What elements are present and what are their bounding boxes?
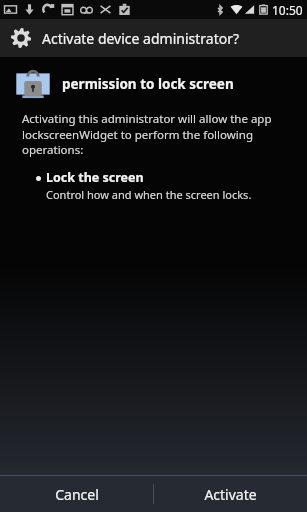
staticText: Lock the screen <box>46 169 144 186</box>
button[interactable]: Activate <box>154 476 307 512</box>
staticText: Cancel <box>55 485 99 504</box>
staticText: 10:50 <box>272 2 303 18</box>
staticText: Activate device administrator? <box>42 29 240 48</box>
staticText: Activate <box>204 485 257 504</box>
staticText: Control how and when the screen locks. <box>46 187 252 202</box>
staticText: permission to lock screen <box>62 75 234 93</box>
button[interactable]: Cancel <box>0 476 153 512</box>
staticText: Activating this administrator will allow… <box>22 111 273 157</box>
